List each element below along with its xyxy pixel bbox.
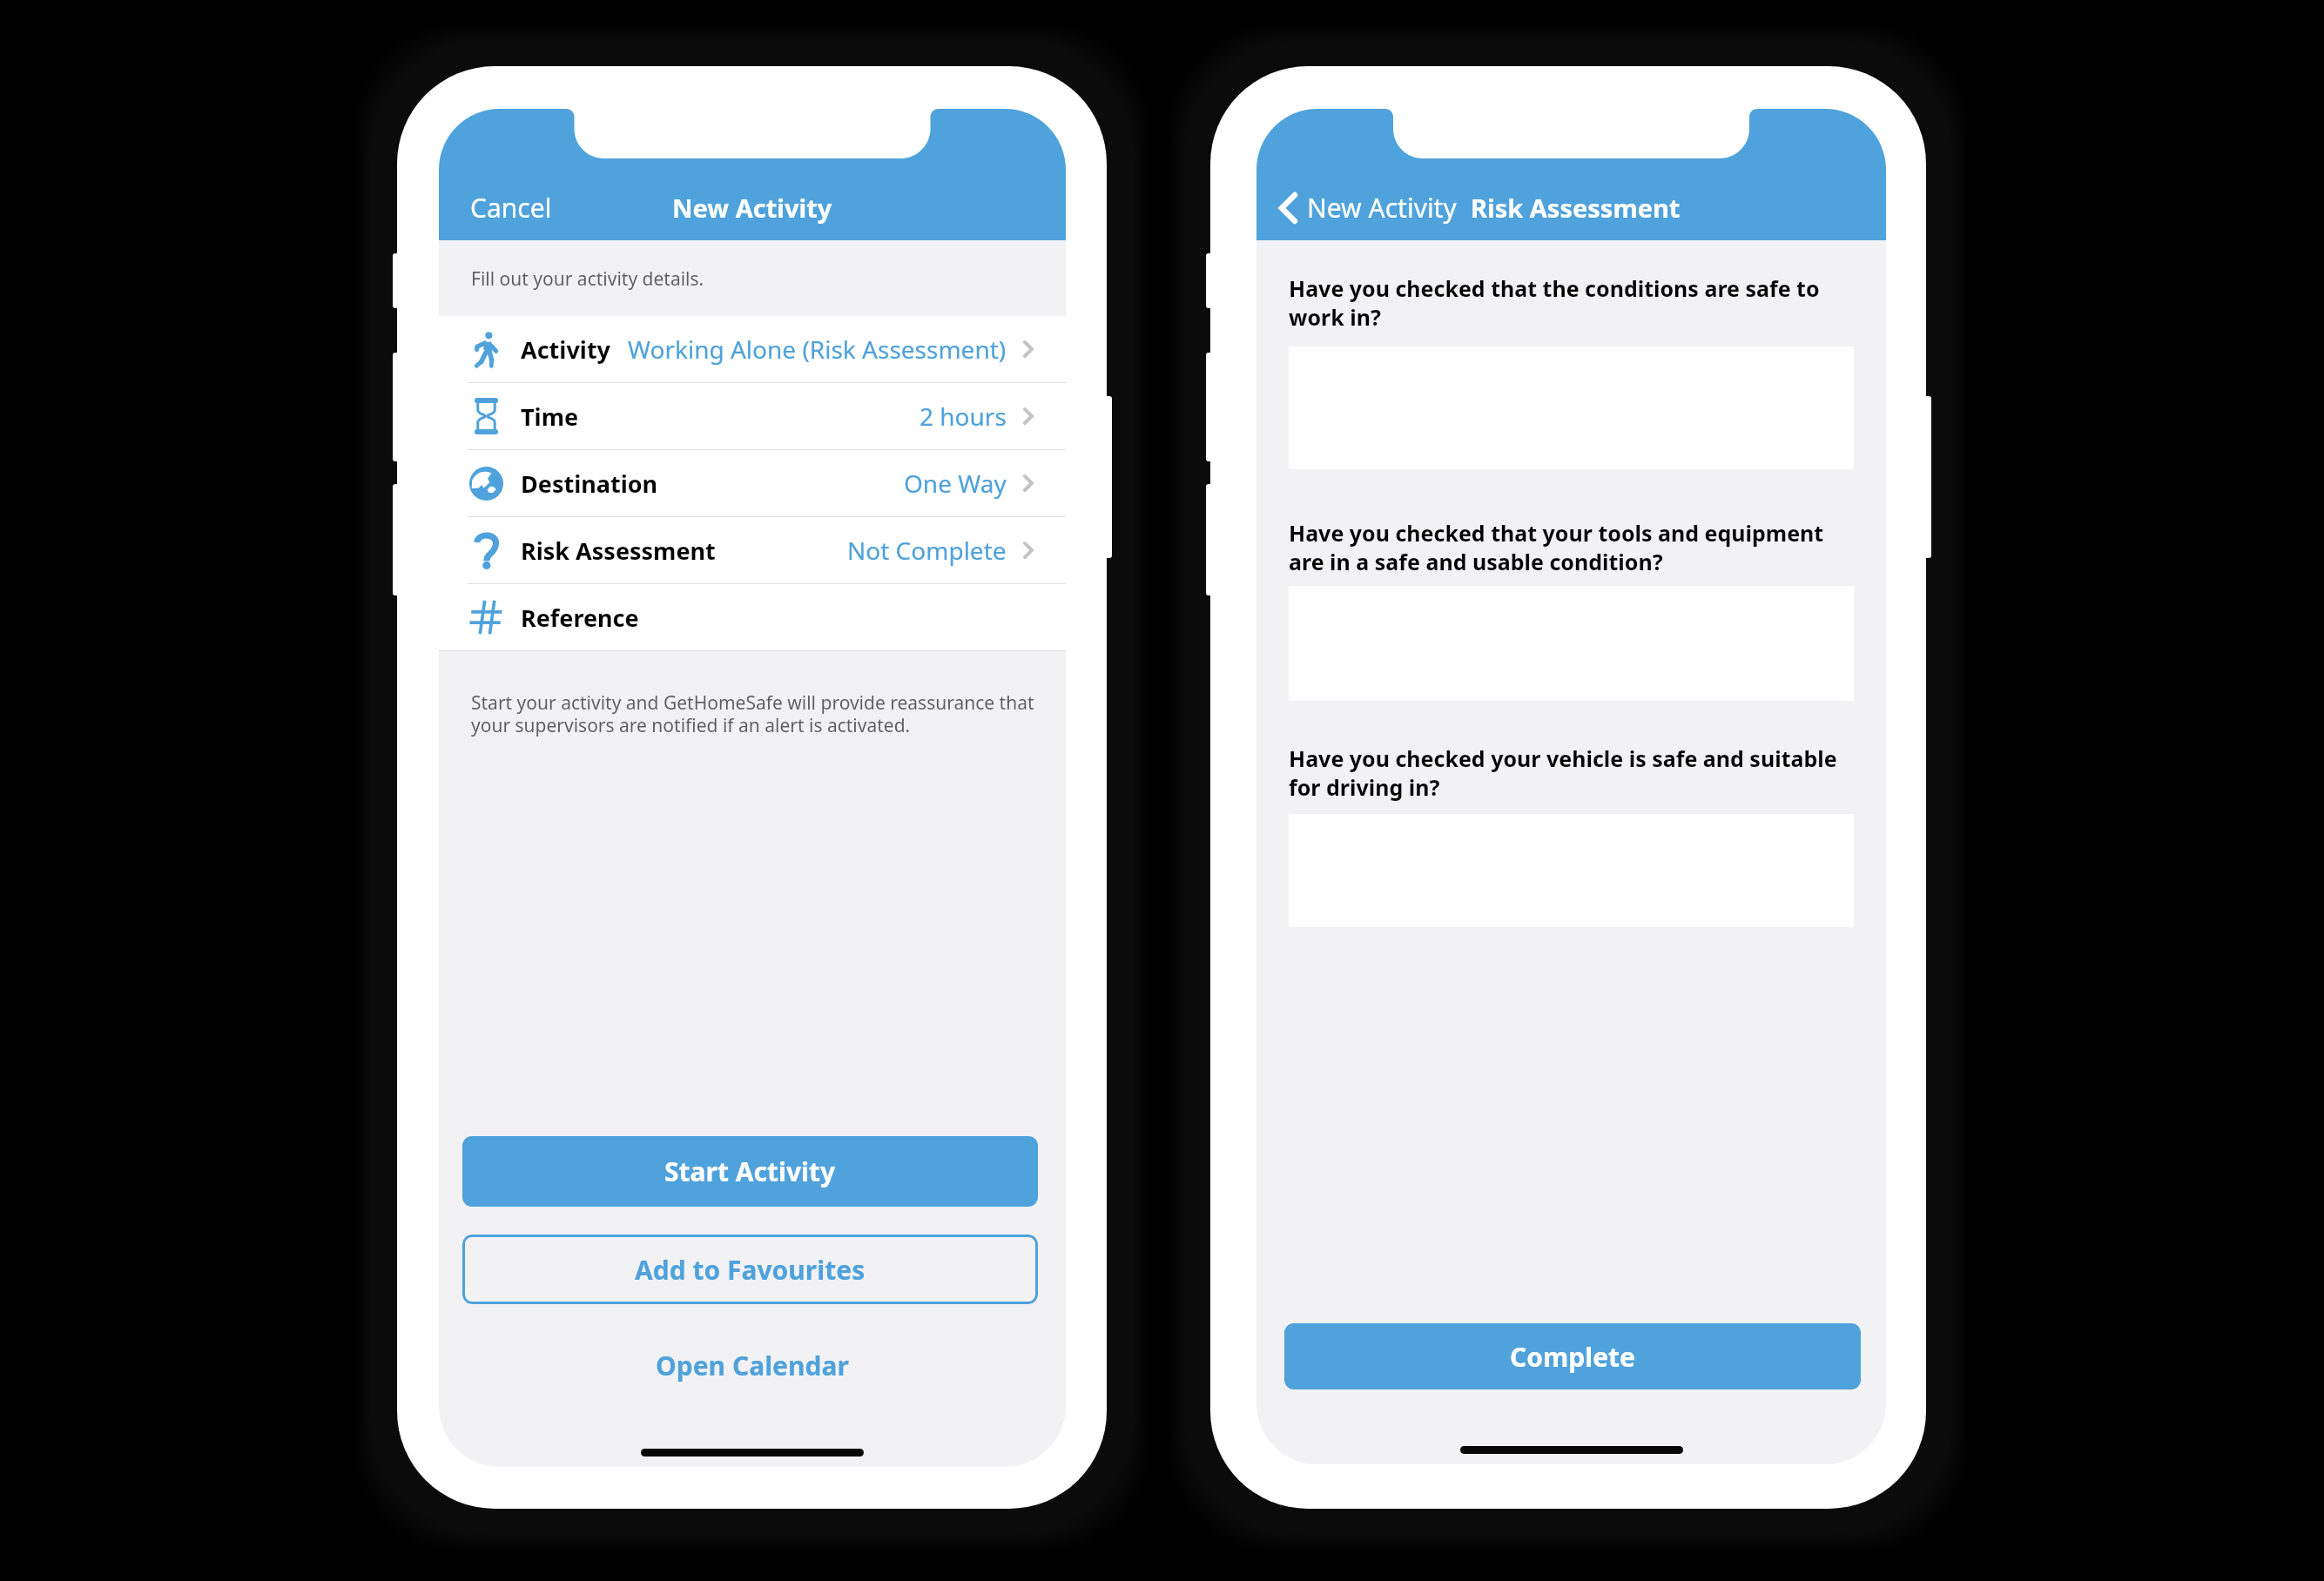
staticText: Risk Assessment bbox=[1471, 191, 1681, 225]
button[interactable]: Activity bbox=[439, 316, 1066, 382]
button[interactable]: Add to Favourites bbox=[462, 1235, 1038, 1304]
staticText: New Activity bbox=[1307, 190, 1457, 225]
staticText: One Way bbox=[904, 467, 1007, 500]
staticText: Complete bbox=[1510, 1339, 1635, 1375]
button[interactable]: Reference bbox=[439, 584, 1066, 650]
staticText: 2 hours bbox=[919, 400, 1007, 433]
staticText: Not Complete bbox=[847, 534, 1007, 567]
button[interactable]: Cancel bbox=[470, 190, 552, 225]
staticText: Start Activity bbox=[664, 1154, 836, 1189]
staticText: Have you checked your vehicle is safe an… bbox=[1289, 743, 1854, 802]
staticText: Cancel bbox=[470, 190, 552, 225]
staticText: Start your activity and GetHomeSafe will… bbox=[471, 690, 1035, 738]
staticText: Add to Favourites bbox=[635, 1252, 866, 1288]
staticText: Risk Assessment bbox=[521, 535, 716, 567]
staticText: Open Calendar bbox=[656, 1348, 849, 1383]
staticText: New Activity bbox=[672, 191, 832, 225]
button[interactable]: Risk Assessment bbox=[439, 517, 1066, 583]
staticText: Destination bbox=[521, 468, 658, 500]
button[interactable]: Open Calendar bbox=[439, 1339, 1066, 1391]
staticText: Fill out your activity details. bbox=[471, 266, 704, 292]
staticText: Have you checked that your tools and equ… bbox=[1289, 518, 1854, 576]
staticText: Activity bbox=[521, 333, 611, 366]
staticText: Reference bbox=[521, 602, 639, 634]
staticText: Have you checked that the conditions are… bbox=[1289, 273, 1854, 332]
button[interactable]: Start Activity bbox=[462, 1136, 1038, 1207]
button[interactable]: Destination bbox=[439, 450, 1066, 516]
staticText: Time bbox=[521, 400, 579, 433]
button[interactable]: Time bbox=[439, 383, 1066, 449]
staticText: Working Alone (Risk Assessment) bbox=[628, 333, 1007, 366]
button[interactable]: Complete bbox=[1284, 1323, 1861, 1389]
button[interactable]: Back to New Activity bbox=[1279, 190, 1457, 225]
